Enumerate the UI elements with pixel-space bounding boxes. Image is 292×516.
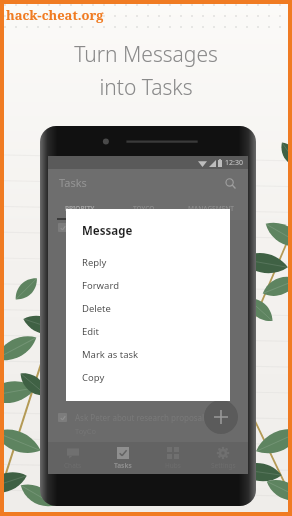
button[interactable]: Search: [220, 173, 240, 193]
button[interactable]: Tasks: [98, 442, 148, 474]
staticText: Ask Peter about research proposal: [75, 412, 205, 423]
button[interactable]: Add task: [204, 400, 238, 434]
staticText: Turn Messages: [74, 40, 218, 69]
button[interactable]: Forward: [66, 274, 230, 297]
button[interactable]: Hubs: [148, 442, 198, 474]
button[interactable]: Delete: [66, 297, 230, 320]
staticText: hack-cheat.org: [6, 6, 104, 24]
button[interactable]: PRIORITY: [48, 196, 112, 220]
staticText: Forward: [82, 279, 119, 292]
staticText: Management: [75, 236, 123, 246]
button[interactable]: MANAGEMENT: [175, 196, 248, 220]
button[interactable]: Edit: [66, 320, 230, 343]
staticText: Tasks: [59, 175, 87, 190]
staticText: Product Roadmap: [75, 222, 143, 233]
button[interactable]: TOYCO: [112, 196, 175, 220]
staticText: Delete: [82, 302, 111, 315]
button[interactable]: Copy: [66, 366, 230, 389]
staticText: Copy: [82, 371, 105, 384]
button[interactable]: Reply: [66, 251, 230, 274]
staticText: Mark as task: [82, 348, 139, 361]
staticText: Tasks: [114, 461, 132, 470]
staticText: Edit: [82, 325, 100, 338]
staticText: Reply: [82, 256, 107, 269]
staticText: MANAGEMENT: [188, 204, 235, 213]
staticText: Message: [82, 223, 133, 239]
staticText: into Tasks: [99, 73, 193, 102]
button[interactable]: Mark as task: [66, 343, 230, 366]
staticText: TOYCO: [133, 204, 155, 213]
staticText: 12:30: [225, 158, 243, 168]
staticText: PRIORITY: [65, 204, 95, 213]
